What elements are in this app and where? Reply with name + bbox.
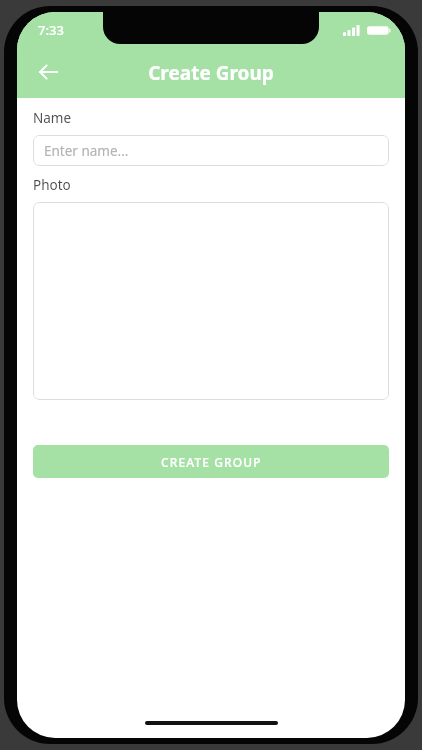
staticText: Name — [33, 109, 72, 127]
staticText: CREATE GROUP — [161, 454, 262, 470]
staticText: 7:33 — [38, 21, 64, 39]
staticText: Photo — [33, 176, 71, 194]
button[interactable]: CREATE GROUP — [33, 445, 389, 478]
button[interactable]: Choose photo — [33, 202, 389, 400]
button[interactable]: Back — [26, 50, 70, 94]
staticText: Create Group — [17, 60, 405, 86]
staticText: Enter name... — [44, 142, 129, 160]
button[interactable]: Enter name... — [33, 135, 389, 166]
